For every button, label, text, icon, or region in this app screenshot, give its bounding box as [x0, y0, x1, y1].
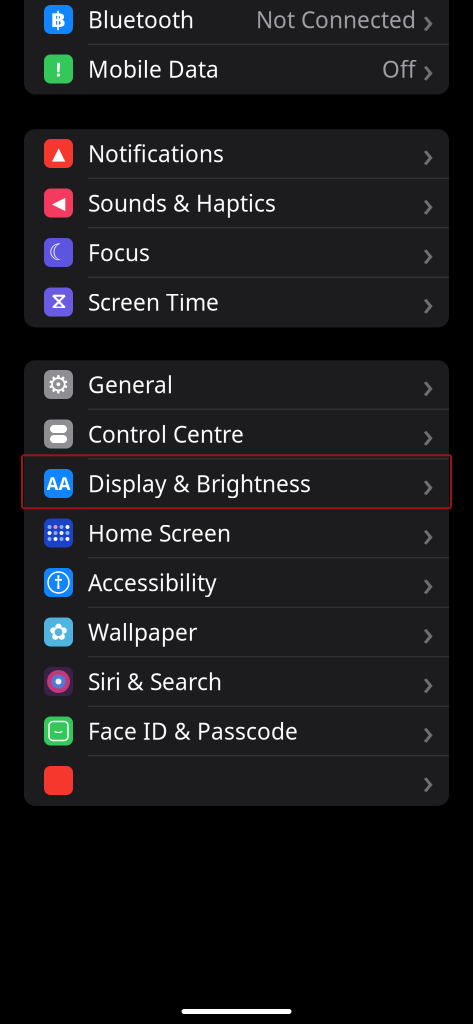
staticText: Screen Time [88, 287, 219, 317]
staticText: ⌣ [53, 724, 63, 738]
staticText: › [422, 46, 433, 92]
staticText: Siri & Search [88, 666, 222, 696]
staticText: › [422, 411, 433, 457]
staticText: › [422, 658, 433, 704]
staticText: Home Screen [88, 518, 231, 548]
staticText: AA [46, 472, 70, 495]
button[interactable]: ⌣ [24, 707, 449, 756]
staticText: ! [55, 56, 61, 82]
button[interactable]: † [24, 558, 449, 608]
staticText: › [422, 460, 433, 506]
button[interactable]: ฿ [24, 0, 449, 45]
staticText: › [422, 609, 433, 655]
staticText: Not Connected [256, 4, 416, 34]
button[interactable]: Control Centre [24, 410, 449, 459]
button[interactable] [24, 756, 449, 806]
staticText: ⚙ [47, 370, 70, 399]
staticText: › [422, 361, 433, 407]
button[interactable]: ▲ [24, 129, 449, 179]
button[interactable]: ☾ [24, 228, 449, 278]
staticText: ⧖ [51, 292, 66, 312]
button[interactable]: AA [24, 459, 449, 509]
button[interactable]: Home Screen [24, 509, 449, 558]
staticText: › [422, 757, 433, 803]
staticText: Notifications [88, 138, 224, 168]
button[interactable]: ⧖ [24, 278, 449, 327]
staticText: Focus [88, 237, 150, 267]
staticText: ▲ [52, 144, 65, 163]
staticText: Sounds & Haptics [88, 188, 276, 218]
button[interactable]: ◀ [24, 179, 449, 228]
staticText: › [422, 559, 433, 605]
staticText: Mobile Data [88, 54, 219, 84]
staticText: Bluetooth [88, 4, 194, 34]
staticText: › [422, 279, 433, 325]
staticText: › [422, 708, 433, 754]
staticText: › [422, 0, 433, 42]
staticText: ◀ [52, 193, 65, 213]
staticText: Display & Brightness [88, 468, 311, 498]
staticText: General [88, 369, 173, 399]
staticText: › [422, 130, 433, 176]
staticText: Accessibility [88, 567, 217, 597]
button[interactable]: ! [24, 45, 449, 94]
button[interactable]: ✿ [24, 608, 449, 657]
staticText: Wallpaper [88, 617, 197, 647]
staticText: ฿ [51, 7, 66, 32]
staticText: › [422, 180, 433, 226]
staticText: Face ID & Passcode [88, 716, 298, 746]
staticText: ✿ [49, 619, 68, 645]
staticText: † [54, 571, 63, 594]
staticText: Off [382, 54, 416, 84]
staticText: › [422, 510, 433, 556]
staticText: › [422, 229, 433, 275]
staticText: Control Centre [88, 419, 244, 449]
button[interactable]: Siri & Search [24, 657, 449, 707]
staticText: ☾ [48, 240, 68, 265]
button[interactable]: ⚙ [24, 360, 449, 410]
